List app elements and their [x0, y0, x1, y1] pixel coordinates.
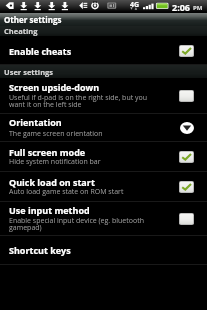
staticText: 2:06 [172, 1, 191, 13]
staticText: gamepad) [9, 223, 42, 233]
button[interactable]: Orientation dropdown [180, 122, 194, 134]
staticText: Shortcut keys [9, 244, 71, 256]
button[interactable]: Quick load on start checkbox [179, 181, 194, 193]
button[interactable]: Enable cheats [0, 36, 207, 65]
staticText: Other settings [4, 14, 62, 25]
staticText: User settings [4, 67, 54, 77]
staticText: Use input method [9, 204, 90, 216]
staticText: Cheating [4, 26, 38, 36]
staticText: Orientation [9, 116, 62, 128]
button[interactable]: Screen upside-down [0, 78, 207, 114]
button[interactable]: Orientation [0, 114, 207, 142]
button[interactable]: Enable cheats checkbox [179, 45, 194, 57]
button[interactable]: Quick load on start [0, 172, 207, 202]
staticText: PM [193, 4, 203, 12]
staticText: Screen upside-down [9, 81, 100, 93]
button[interactable]: Use input method [0, 202, 207, 236]
staticText: Enable cheats [9, 45, 72, 57]
staticText: Hide system notification bar [9, 157, 101, 167]
button[interactable]: Full screen mode checkbox [179, 151, 194, 163]
staticText: Auto load game state on ROM start [9, 187, 124, 197]
staticText: Quick load on start [9, 176, 95, 188]
staticText: Enable special input device (eg. bluetoo… [9, 216, 144, 226]
button[interactable]: Use input method checkbox [179, 213, 194, 225]
button[interactable]: Screen upside-down checkbox [179, 90, 194, 102]
staticText: Full screen mode [9, 146, 86, 158]
button[interactable]: Full screen mode [0, 142, 207, 172]
button[interactable]: Shortcut keys [0, 236, 207, 265]
staticText: Useful if d-pad is on the right side, bu… [9, 93, 148, 103]
staticText: The game screen orientation [9, 129, 103, 139]
staticText: 4G [130, 0, 140, 10]
staticText: want it on the left side [9, 100, 82, 110]
